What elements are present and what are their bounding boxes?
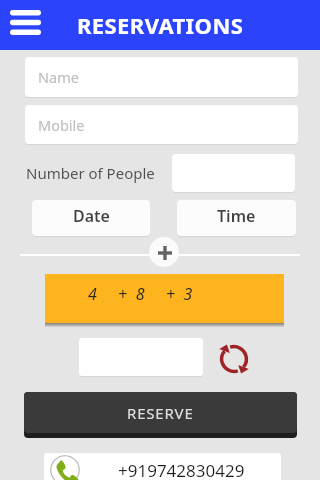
button[interactable]: Add another reservation xyxy=(149,237,179,267)
button[interactable]: Mobile xyxy=(25,105,298,144)
staticText: Date xyxy=(73,205,110,227)
staticText: Mobile xyxy=(38,115,85,135)
button[interactable]: Refresh captcha xyxy=(217,342,251,376)
staticText: Name xyxy=(38,67,79,87)
button[interactable]: Date xyxy=(32,200,150,236)
button[interactable]: Time xyxy=(177,200,296,236)
staticText: RESERVATIONS xyxy=(77,10,244,40)
button[interactable]: Name xyxy=(25,57,298,97)
staticText: RESERVE xyxy=(127,403,194,423)
button[interactable]: RESERVE xyxy=(24,392,297,433)
button[interactable]: Open navigation menu xyxy=(9,9,41,36)
staticText: 4 + 8 + 3 xyxy=(88,283,195,305)
staticText: Time xyxy=(217,205,256,227)
button[interactable]: +919742830429 xyxy=(44,453,281,480)
staticText: +919742830429 xyxy=(118,459,245,480)
staticText: Number of People xyxy=(26,163,155,183)
